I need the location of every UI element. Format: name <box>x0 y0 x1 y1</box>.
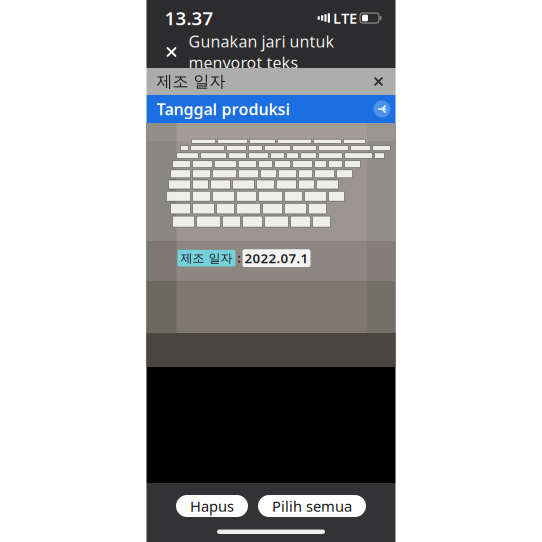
button[interactable]: Hapus <box>365 68 391 95</box>
staticText: 제조 일자 <box>180 251 232 265</box>
button[interactable]: Pilih semua <box>258 495 366 517</box>
staticText: 2022.07.1 <box>244 249 308 267</box>
staticText: Pilih semua <box>272 496 352 516</box>
button[interactable]: Hapus <box>176 495 248 517</box>
staticText: 제조 일자 <box>156 72 225 91</box>
button[interactable]: Tutup <box>154 36 188 68</box>
staticText: LTE <box>333 8 357 28</box>
staticText: 13.37 <box>164 6 213 30</box>
staticText: Hapus <box>190 496 234 516</box>
staticText: Tanggal produksi <box>156 98 290 120</box>
staticText: : <box>237 250 240 266</box>
button[interactable]: Tanggal produksi <box>146 95 395 123</box>
staticText: Gunakan jari untuk menyorot teks <box>188 31 334 73</box>
